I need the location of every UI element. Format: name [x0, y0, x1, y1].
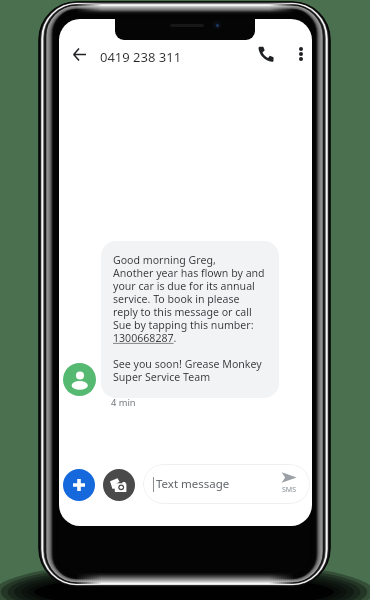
staticText: 0419 238 311 — [100, 48, 182, 66]
button[interactable]: Text message — [143, 464, 310, 504]
button[interactable]: Add attachment — [63, 469, 95, 501]
staticText: SMS — [282, 485, 297, 495]
button[interactable]: Back — [66, 41, 92, 67]
button[interactable]: Camera — [103, 469, 135, 501]
button[interactable]: Good morning Greg, Another year has flow… — [101, 241, 279, 398]
staticText: Text message — [156, 476, 230, 492]
staticText: 4 min — [111, 396, 136, 409]
staticText: Good morning Greg, Another year has flow… — [113, 253, 265, 385]
button[interactable]: More options — [288, 41, 312, 67]
button[interactable]: Contact avatar — [63, 363, 96, 396]
button[interactable]: Call — [251, 39, 281, 69]
